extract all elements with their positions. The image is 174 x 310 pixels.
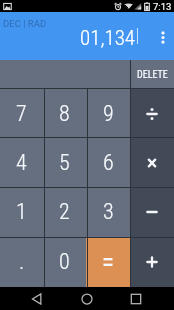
- button[interactable]: DELETE: [130, 60, 174, 89]
- button[interactable]: Back: [15, 287, 59, 310]
- button[interactable]: Divide: [130, 89, 174, 138]
- button[interactable]: 0: [43, 237, 86, 287]
- staticText: 7:13: [153, 1, 172, 12]
- button[interactable]: Recent apps: [114, 287, 158, 310]
- staticText: 9: [103, 101, 114, 127]
- staticText: 6: [103, 150, 114, 176]
- staticText: 8: [59, 101, 70, 127]
- button[interactable]: 1: [0, 187, 43, 237]
- button[interactable]: Expression area: [0, 60, 130, 89]
- button[interactable]: 5: [43, 138, 86, 187]
- staticText: 7: [16, 101, 27, 127]
- staticText: 1: [16, 199, 27, 225]
- button[interactable]: 9: [86, 89, 130, 138]
- button[interactable]: Subtract: [130, 187, 174, 237]
- staticText: 5: [59, 150, 70, 176]
- staticText: 0: [59, 249, 70, 275]
- button[interactable]: Add: [130, 237, 174, 287]
- button[interactable]: Home: [65, 287, 109, 310]
- button[interactable]: Equals: [86, 237, 130, 287]
- button[interactable]: 8: [43, 89, 86, 138]
- staticText: 01,134: [80, 26, 136, 51]
- button[interactable]: DEC | RAD: [3, 18, 47, 29]
- staticText: 4: [16, 150, 27, 176]
- button[interactable]: 7: [0, 89, 43, 138]
- staticText: 3: [103, 199, 114, 225]
- button[interactable]: 6: [86, 138, 130, 187]
- button[interactable]: .: [0, 237, 43, 287]
- staticText: 2: [59, 199, 70, 225]
- button[interactable]: More options: [150, 22, 174, 52]
- staticText: DELETE: [137, 69, 168, 81]
- button[interactable]: 2: [43, 187, 86, 237]
- button[interactable]: Multiply: [130, 138, 174, 187]
- button[interactable]: 4: [0, 138, 43, 187]
- staticText: .: [19, 249, 25, 275]
- button[interactable]: 3: [86, 187, 130, 237]
